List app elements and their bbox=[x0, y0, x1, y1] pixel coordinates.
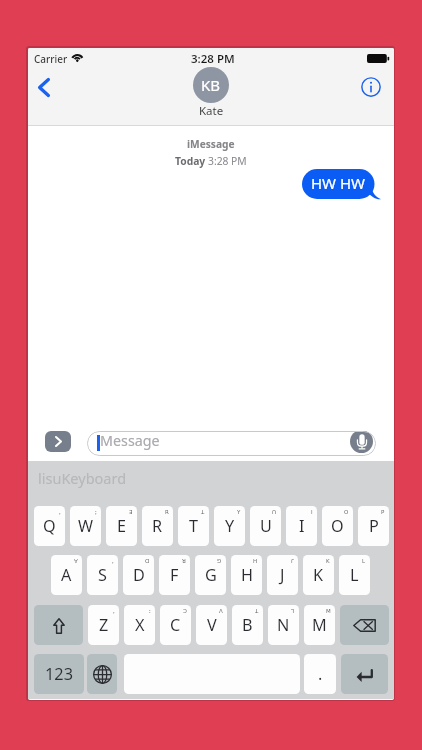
staticText: 3:28 PM bbox=[191, 51, 235, 67]
button[interactable]: Return bbox=[341, 654, 388, 694]
staticText: G bbox=[205, 564, 217, 586]
staticText: T bbox=[189, 515, 199, 537]
staticText: B bbox=[242, 614, 253, 636]
staticText: ꓱ bbox=[129, 509, 133, 515]
button[interactable]: T bbox=[178, 506, 209, 546]
button[interactable]: O bbox=[322, 506, 353, 546]
staticText: ꓗ bbox=[326, 558, 330, 564]
staticText: ꓷ bbox=[145, 558, 150, 564]
button[interactable]: W bbox=[70, 506, 101, 546]
staticText: Today bbox=[175, 154, 208, 168]
staticText: . bbox=[318, 663, 323, 685]
staticText: ꓧ bbox=[253, 558, 258, 564]
staticText: ꓼ bbox=[95, 509, 97, 515]
button[interactable]: Y bbox=[214, 506, 245, 546]
staticText: R bbox=[152, 515, 163, 537]
staticText: ꓨ bbox=[217, 558, 222, 564]
button[interactable]: Apps bbox=[45, 431, 71, 452]
button[interactable]: P bbox=[358, 506, 389, 546]
staticText: ꓶ bbox=[291, 608, 295, 614]
staticText: N bbox=[277, 614, 290, 636]
staticText: H bbox=[241, 564, 253, 586]
staticText: ꓕ bbox=[255, 608, 259, 614]
button[interactable]: Back bbox=[30, 70, 58, 104]
staticText: L bbox=[350, 564, 359, 586]
staticText: 123 bbox=[45, 663, 73, 685]
staticText: A bbox=[61, 564, 72, 586]
button[interactable]: F bbox=[159, 555, 190, 595]
staticText: Q bbox=[43, 515, 56, 537]
staticText: ꓵ bbox=[272, 509, 277, 515]
staticText: HW HW bbox=[311, 173, 366, 193]
staticText: lisuKeyboard bbox=[38, 468, 127, 488]
staticText: K bbox=[313, 564, 324, 586]
staticText: ꓥ bbox=[219, 608, 223, 614]
staticText: I bbox=[299, 515, 305, 537]
staticText: ꓑ bbox=[381, 509, 385, 515]
staticText: D bbox=[133, 564, 145, 586]
staticText: Message bbox=[100, 431, 160, 450]
staticText: ꓹ bbox=[113, 608, 115, 614]
button[interactable]: C bbox=[160, 605, 191, 645]
staticText: S bbox=[98, 564, 107, 586]
button[interactable]: U bbox=[250, 506, 281, 546]
button[interactable]: X bbox=[124, 605, 155, 645]
staticText: ꓕ bbox=[201, 509, 205, 515]
staticText: O bbox=[331, 515, 344, 537]
button[interactable]: Numbers bbox=[34, 654, 84, 694]
staticText: W bbox=[78, 515, 94, 537]
button[interactable]: K bbox=[303, 555, 334, 595]
staticText: ꓛ bbox=[183, 608, 187, 614]
button[interactable]: Switch keyboard bbox=[87, 654, 117, 694]
staticText: E bbox=[117, 515, 127, 537]
staticText: ꓯ bbox=[74, 558, 78, 564]
staticText: ꓹ bbox=[59, 509, 61, 515]
button[interactable]: H bbox=[231, 555, 262, 595]
staticText: ꓳ bbox=[344, 509, 349, 515]
button[interactable]: S bbox=[87, 555, 118, 595]
button[interactable]: . bbox=[304, 654, 336, 694]
staticText: ꓡ bbox=[362, 558, 366, 564]
staticText: ꓩ bbox=[291, 558, 294, 564]
staticText: Y bbox=[225, 515, 235, 537]
staticText: ꓣ bbox=[165, 509, 169, 515]
button[interactable]: Dictate bbox=[350, 431, 373, 453]
staticText: iMessage bbox=[187, 137, 235, 151]
staticText: X bbox=[135, 614, 145, 636]
button[interactable]: I bbox=[286, 506, 317, 546]
button[interactable]: HW HW bbox=[302, 168, 375, 198]
staticText: ꓬ bbox=[237, 509, 241, 515]
button[interactable]: KB bbox=[28, 67, 394, 119]
button[interactable]: N bbox=[268, 605, 299, 645]
button[interactable]: B bbox=[232, 605, 263, 645]
button[interactable]: Backspace bbox=[340, 605, 389, 645]
staticText: P bbox=[369, 515, 379, 537]
staticText: V bbox=[207, 614, 217, 636]
button[interactable]: J bbox=[267, 555, 298, 595]
staticText: C bbox=[170, 614, 181, 636]
button[interactable]: Message bbox=[87, 431, 376, 456]
staticText: ꓹ bbox=[112, 558, 114, 564]
staticText: M bbox=[312, 614, 327, 636]
staticText: ꓟ bbox=[326, 608, 331, 614]
staticText: ꓽ bbox=[149, 608, 151, 614]
staticText: Z bbox=[99, 614, 109, 636]
staticText: ꓤ bbox=[182, 558, 186, 564]
button[interactable]: A bbox=[51, 555, 82, 595]
button[interactable]: R bbox=[142, 506, 173, 546]
button[interactable]: L bbox=[339, 555, 370, 595]
button[interactable]: Z bbox=[88, 605, 119, 645]
button[interactable]: Q bbox=[34, 506, 65, 546]
staticText: Carrier bbox=[34, 52, 68, 66]
button[interactable]: Shift bbox=[34, 605, 83, 645]
staticText: J bbox=[280, 564, 285, 586]
button[interactable]: V bbox=[196, 605, 227, 645]
button[interactable]: M bbox=[304, 605, 335, 645]
button[interactable]: E bbox=[106, 506, 137, 546]
button[interactable]: D bbox=[123, 555, 154, 595]
staticText: ꓲ bbox=[311, 509, 313, 515]
button[interactable]: G bbox=[195, 555, 226, 595]
button[interactable]: Details bbox=[356, 72, 386, 102]
staticText: KB bbox=[201, 75, 221, 95]
